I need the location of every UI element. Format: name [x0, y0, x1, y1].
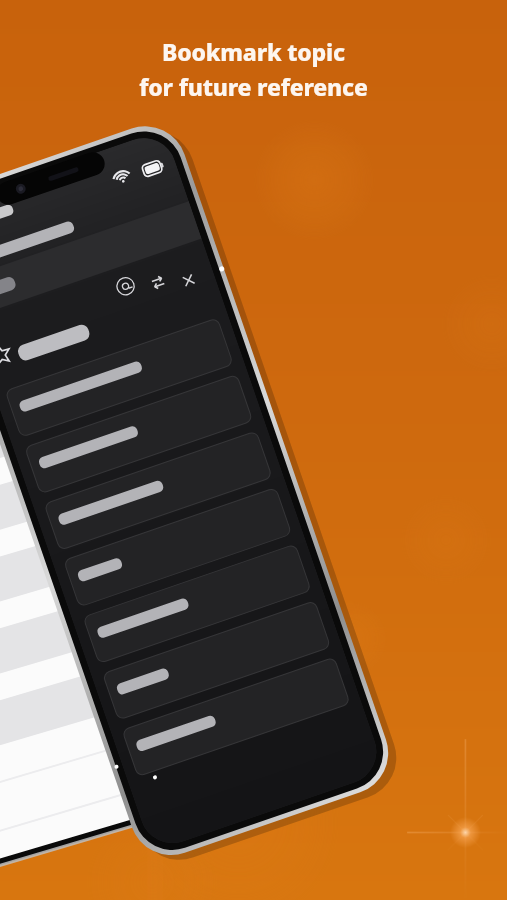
button[interactable]: Bookmarks and Notes screen preview [0, 0, 507, 900]
staticText: for future reference [139, 71, 368, 102]
staticText: Bookmark topic [162, 36, 345, 67]
